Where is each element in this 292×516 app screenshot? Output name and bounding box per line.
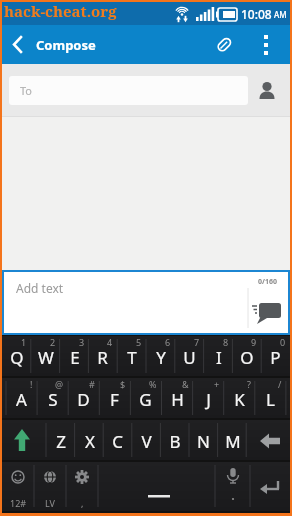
staticText: Compose <box>36 36 96 54</box>
staticText: F <box>110 388 119 411</box>
button[interactable] <box>250 462 290 512</box>
button[interactable]: A <box>6 378 37 418</box>
staticText: M <box>225 430 241 453</box>
staticText: P <box>270 346 281 369</box>
button[interactable]: E <box>60 336 89 376</box>
staticText: V <box>141 430 152 453</box>
button[interactable]: C <box>103 420 132 460</box>
button[interactable]: LV <box>34 462 66 512</box>
button[interactable]: P <box>261 336 290 376</box>
button[interactable]: Z <box>46 420 75 460</box>
staticText: 0 <box>280 336 286 348</box>
staticText: 4 <box>107 336 113 348</box>
button[interactable]: K <box>224 378 255 418</box>
button[interactable]: O <box>232 336 261 376</box>
staticText: D <box>77 388 90 411</box>
staticText: , <box>81 497 84 509</box>
button[interactable]: , <box>66 462 98 512</box>
staticText: $ <box>120 378 126 390</box>
button[interactable]: I <box>204 336 233 376</box>
staticText: S <box>48 388 58 411</box>
button[interactable]: G <box>130 378 161 418</box>
button[interactable]: W <box>31 336 60 376</box>
staticText: Q <box>10 346 24 369</box>
button[interactable] <box>215 462 250 512</box>
staticText: To <box>20 83 33 98</box>
button[interactable]: U <box>175 336 204 376</box>
staticText: & <box>182 378 189 390</box>
staticText: L <box>266 388 275 411</box>
button[interactable] <box>254 78 280 104</box>
button[interactable]: N <box>189 420 218 460</box>
staticText: 9 <box>251 336 257 348</box>
staticText: X <box>85 430 95 453</box>
button[interactable]: Add text <box>2 270 290 335</box>
staticText: hack-cheat.org <box>4 1 117 21</box>
button[interactable]: J <box>193 378 224 418</box>
staticText: 1 <box>21 336 27 348</box>
staticText: 2 <box>50 336 56 348</box>
button[interactable]: S <box>37 378 68 418</box>
staticText: 10:08 <box>241 6 272 22</box>
staticText: 3 <box>79 336 85 348</box>
button[interactable] <box>246 420 290 460</box>
staticText: R <box>97 346 108 369</box>
button[interactable]: F <box>99 378 130 418</box>
staticText: 12# <box>10 497 27 509</box>
staticText: H <box>171 388 184 411</box>
button[interactable] <box>210 31 238 59</box>
staticText: 8 <box>223 336 229 348</box>
button[interactable] <box>254 25 278 64</box>
button[interactable]: T <box>117 336 146 376</box>
button[interactable]: L <box>255 378 286 418</box>
staticText: ! <box>30 378 33 390</box>
staticText: @ <box>55 378 64 390</box>
button[interactable] <box>2 420 46 460</box>
staticText: + <box>214 378 220 390</box>
staticText: A <box>16 388 27 411</box>
staticText: J <box>206 388 211 411</box>
staticText: LV <box>45 497 55 509</box>
button[interactable]: Q <box>2 336 31 376</box>
staticText: # <box>89 378 95 390</box>
staticText: 7 <box>194 336 200 348</box>
staticText: % <box>149 378 157 390</box>
staticText: 0/160 <box>258 277 277 287</box>
staticText: O <box>240 346 254 369</box>
staticText: C <box>112 430 123 453</box>
button[interactable]: R <box>88 336 117 376</box>
button[interactable] <box>2 25 30 64</box>
staticText: ? <box>247 378 251 390</box>
button[interactable]: D <box>68 378 99 418</box>
staticText: T <box>127 346 137 369</box>
button[interactable]: M <box>218 420 247 460</box>
staticText: G <box>139 388 152 411</box>
staticText: U <box>183 346 196 369</box>
staticText: / <box>278 378 282 390</box>
button[interactable]: To <box>9 76 248 105</box>
staticText: I <box>216 346 222 369</box>
staticText: AM <box>274 9 287 20</box>
staticText: Y <box>156 346 166 369</box>
staticText: K <box>234 388 245 411</box>
staticText: Z <box>56 430 66 453</box>
staticText: W <box>38 346 54 369</box>
button[interactable]: H <box>162 378 193 418</box>
button[interactable]: 12# <box>2 462 34 512</box>
staticText: N <box>197 430 210 453</box>
staticText: Add text <box>16 280 64 296</box>
button[interactable]: B <box>160 420 189 460</box>
staticText: 5 <box>136 336 142 348</box>
staticText: B <box>169 430 181 453</box>
button[interactable]: V <box>132 420 161 460</box>
button[interactable]: X <box>75 420 104 460</box>
button[interactable] <box>98 462 215 512</box>
staticText: 6 <box>165 336 171 348</box>
button[interactable]: Y <box>146 336 175 376</box>
staticText: E <box>70 346 80 369</box>
